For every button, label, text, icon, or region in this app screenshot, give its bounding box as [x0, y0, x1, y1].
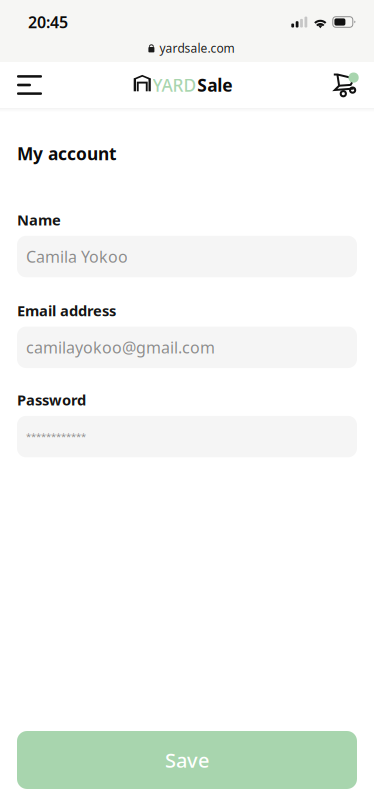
button[interactable]: Camila Yokoo: [17, 236, 357, 277]
staticText: ************: [26, 430, 86, 443]
button[interactable]: yardsale.com: [0, 35, 374, 60]
staticText: Password: [17, 390, 86, 410]
staticText: camilayokoo@gmail.com: [26, 337, 215, 358]
staticText: Sale: [197, 73, 232, 96]
button[interactable]: Save: [17, 731, 357, 789]
staticText: 20:45: [28, 11, 68, 33]
button[interactable]: Menu: [0, 62, 56, 108]
staticText: yardsale.com: [160, 40, 235, 56]
button[interactable]: ************: [17, 416, 357, 457]
button[interactable]: camilayokoo@gmail.com: [17, 327, 357, 368]
staticText: YARD: [152, 73, 196, 96]
button[interactable]: Cart: [318, 62, 374, 108]
staticText: Email address: [17, 301, 116, 320]
staticText: Name: [17, 210, 61, 229]
staticText: Camila Yokoo: [26, 246, 128, 267]
staticText: Save: [165, 747, 209, 773]
staticText: My account: [17, 142, 117, 165]
button[interactable]: Yard Sale home: [138, 62, 236, 108]
